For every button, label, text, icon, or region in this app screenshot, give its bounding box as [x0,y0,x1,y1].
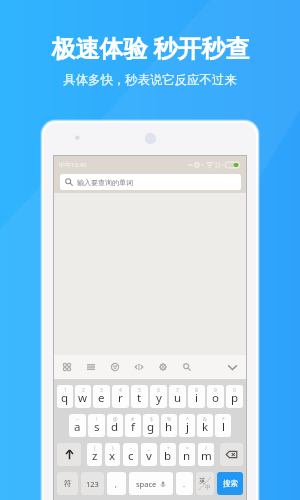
button[interactable]: ( [87,443,102,466]
button[interactable]: 2 [75,385,91,408]
button[interactable]: Hide keyboard [222,357,242,377]
button[interactable]: 5 [131,385,148,408]
button[interactable]: 7 [169,385,186,408]
staticText: k [202,419,209,435]
staticText: , [115,479,118,489]
button[interactable]: Voice input [127,355,151,379]
staticText: $ [150,416,153,423]
button[interactable]: _ [141,443,157,466]
staticText: w [78,390,88,406]
staticText: 英 [199,477,206,485]
button[interactable]: List [79,355,103,379]
staticText: ! [96,416,98,423]
staticText: + [167,445,170,452]
staticText: 7 [176,387,179,394]
button[interactable]: 9 [207,385,224,408]
staticText: j [186,419,189,435]
button[interactable]: 8 [188,385,205,408]
staticText: - [130,445,132,452]
staticText: 符 [64,479,72,488]
button[interactable]: Settings [151,355,175,379]
staticText: _ [148,445,151,452]
button[interactable]: 3 [93,385,110,408]
button[interactable]: Switch language [196,472,214,495]
button[interactable]: @ [107,414,123,437]
button[interactable]: ~ [69,414,86,437]
staticText: 3 [100,387,103,394]
staticText: f [131,419,135,435]
staticText: ^ [186,416,189,423]
staticText: s [94,419,100,435]
staticText: 具体多快，秒表说它反应不过来 [63,72,237,88]
staticText: 2 [82,387,85,394]
button[interactable]: space [129,472,173,495]
button[interactable]: , [107,472,126,495]
button[interactable]: * [215,414,231,437]
button[interactable]: ^ [179,414,195,437]
button[interactable]: % [161,414,177,437]
staticText: t [137,390,142,406]
button[interactable]: / [198,443,214,466]
button[interactable]: Shift [57,443,81,466]
button[interactable]: 符 [57,472,78,495]
staticText: ) [112,445,114,452]
staticText: u [174,390,182,406]
staticText: 5 [138,387,141,394]
staticText: x [109,448,116,464]
staticText: / [205,445,207,452]
staticText: space [136,479,157,489]
staticText: 搜索 [223,479,238,488]
staticText: 8 [195,387,198,394]
staticText: y [156,390,162,406]
staticText: l [222,419,225,435]
staticText: m [201,448,212,464]
button[interactable]: 1 [57,385,73,408]
button[interactable]: = [179,443,195,466]
button[interactable]: 输入要查询的单词 [60,174,241,190]
staticText: z [92,448,98,464]
button[interactable]: + [160,443,176,466]
button[interactable]: 4 [112,385,129,408]
button[interactable]: . [176,472,193,495]
staticText: 0 [233,387,236,394]
staticText: g [147,419,155,435]
staticText: 1 [64,387,67,394]
button[interactable]: - [123,443,138,466]
staticText: 极速体验 秒开秒查 [51,31,250,64]
staticText: . [183,479,186,489]
staticText: @ [113,416,118,423]
button[interactable]: # [125,414,141,437]
button[interactable]: & [197,414,213,437]
staticText: 4 [119,387,122,394]
staticText: p [231,390,239,406]
staticText: 输入要查询的单词 [77,178,133,187]
button[interactable]: 搜索 [217,472,243,495]
staticText: q [61,390,69,406]
button[interactable]: $ [143,414,159,437]
button[interactable]: Emoji [103,355,127,379]
staticText: d [111,419,119,435]
staticText: b [164,448,172,464]
staticText: & [203,416,207,423]
staticText: 9 [214,387,217,394]
staticText: % [167,416,172,423]
staticText: ( [94,445,96,452]
staticText: ~ [76,416,79,423]
staticText: * [222,416,225,423]
staticText: = [186,445,189,452]
button[interactable]: Keyboard layout [55,355,79,379]
button[interactable]: 123 [81,472,104,495]
staticText: h [165,419,173,435]
button[interactable]: ! [88,414,105,437]
button[interactable]: Backspace [220,443,243,466]
button[interactable]: Search [175,355,199,379]
button[interactable]: ) [105,443,120,466]
button[interactable]: 0 [226,385,243,408]
staticText: 中午12:45 [59,161,87,169]
staticText: # [131,416,135,423]
staticText: i [195,390,198,406]
staticText: 123 [86,479,99,489]
button[interactable]: 6 [150,385,167,408]
staticText: e [98,390,105,406]
staticText: o [212,390,219,406]
